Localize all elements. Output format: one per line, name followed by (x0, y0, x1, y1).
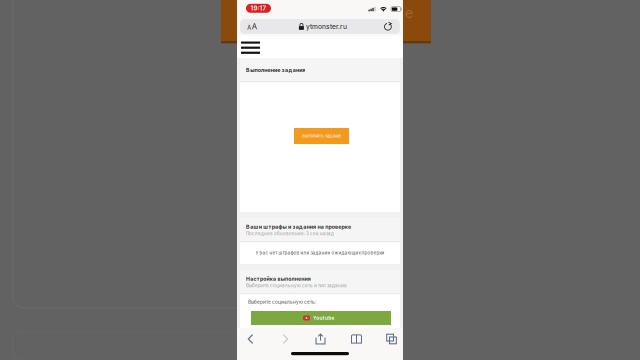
staticText: Последнее обновление: 3 сек. назад (246, 231, 334, 236)
button[interactable]: Forward (270, 328, 301, 350)
staticText: Выберите социальную сеть: (248, 299, 316, 305)
staticText: A (247, 24, 251, 31)
button[interactable]: Bookmarks (341, 328, 372, 350)
button[interactable]: Page settings (241, 19, 263, 34)
staticText: Выполнить задание (302, 133, 341, 138)
staticText: У вас нет штрафов или заданий ожидающих … (255, 250, 384, 256)
button[interactable]: Youtube (251, 311, 391, 325)
staticText: Выберите социальную сеть и тип задания (246, 283, 347, 288)
button[interactable]: Share (305, 328, 336, 350)
staticText: Выполнение задания (246, 67, 305, 73)
staticText: Ваши штрафы и задания на проверке (246, 224, 351, 230)
button[interactable]: Выполнить задание (294, 128, 349, 144)
button[interactable]: Menu (241, 41, 260, 54)
staticText: ytmonster.ru (306, 22, 347, 31)
button[interactable]: Reload (378, 19, 398, 34)
staticText: 19:17 (250, 5, 266, 12)
button[interactable]: Tabs (376, 328, 407, 350)
staticText: Настройка выполнения (246, 276, 311, 282)
staticText: Youtube (313, 315, 335, 321)
staticText: A (252, 22, 257, 31)
staticText: e (405, 4, 413, 21)
button[interactable]: Back (235, 328, 266, 350)
